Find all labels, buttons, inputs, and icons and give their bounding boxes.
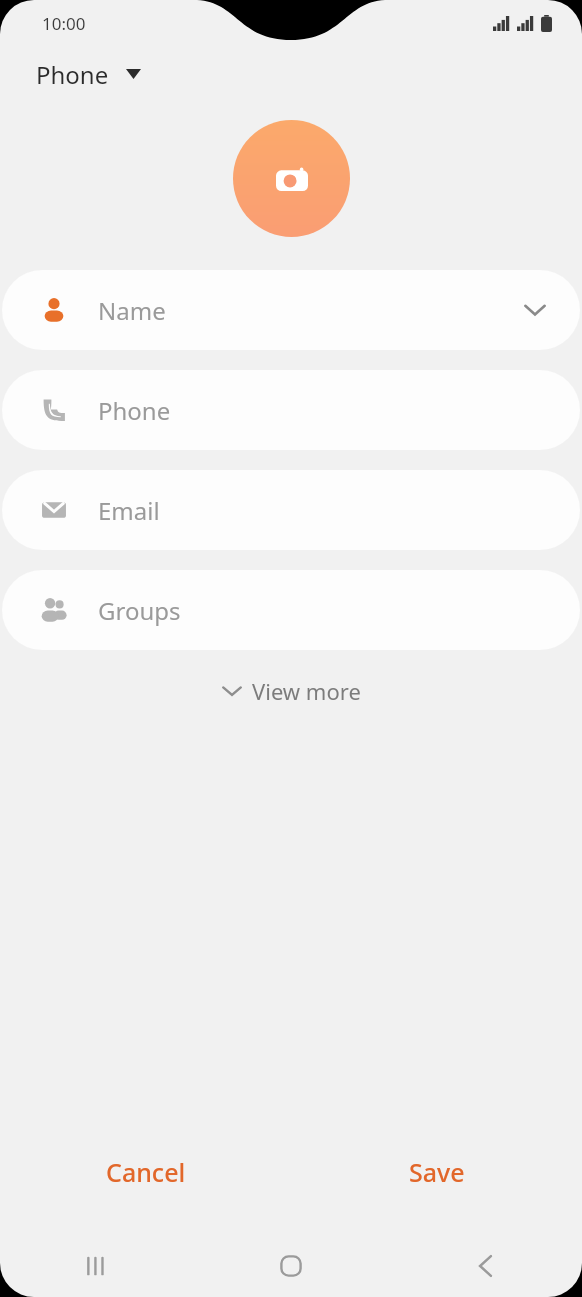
staticText: Phone (98, 394, 171, 427)
button[interactable]: Add contact photo (233, 120, 350, 237)
button[interactable]: Cancel (0, 1141, 291, 1203)
button[interactable]: Email (2, 470, 580, 550)
staticText: Cancel (106, 1155, 186, 1189)
staticText: Groups (98, 594, 181, 627)
button[interactable]: Phone (2, 370, 580, 450)
button[interactable]: Back (388, 1235, 582, 1297)
staticText: Phone (36, 58, 109, 91)
button[interactable]: Phone (0, 46, 582, 102)
button[interactable]: Home (194, 1235, 388, 1297)
button[interactable]: View more (206, 668, 377, 714)
staticText: Save (409, 1155, 465, 1189)
button[interactable]: Save (291, 1141, 582, 1203)
button[interactable]: Name (2, 270, 580, 350)
staticText: Name (98, 294, 166, 327)
staticText: View more (252, 676, 361, 706)
button[interactable]: Recents (0, 1235, 194, 1297)
button[interactable]: Groups (2, 570, 580, 650)
staticText: Email (98, 494, 160, 527)
staticText: 10:00 (42, 12, 86, 35)
